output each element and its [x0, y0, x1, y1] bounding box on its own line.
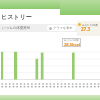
button[interactable]: グラフを表示 — [47, 25, 76, 31]
staticText: 27.3 — [81, 26, 90, 32]
staticText: あなたの消費 — [64, 39, 79, 42]
staticText: グラフを表示 — [53, 26, 73, 30]
staticText: ヒストリー — [1, 13, 32, 21]
staticText: いつもの体重推移 — [2, 26, 31, 30]
staticText: あなたの消費 — [82, 23, 98, 26]
staticText: 28.5kcal — [64, 42, 81, 47]
